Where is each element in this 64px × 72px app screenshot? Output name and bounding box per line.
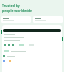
staticText: people worldwide <box>2 8 33 13</box>
button[interactable] <box>1 16 31 23</box>
button[interactable] <box>33 16 63 23</box>
staticText: Trusted by <box>2 3 20 8</box>
button[interactable]: Get started <box>3 29 61 32</box>
